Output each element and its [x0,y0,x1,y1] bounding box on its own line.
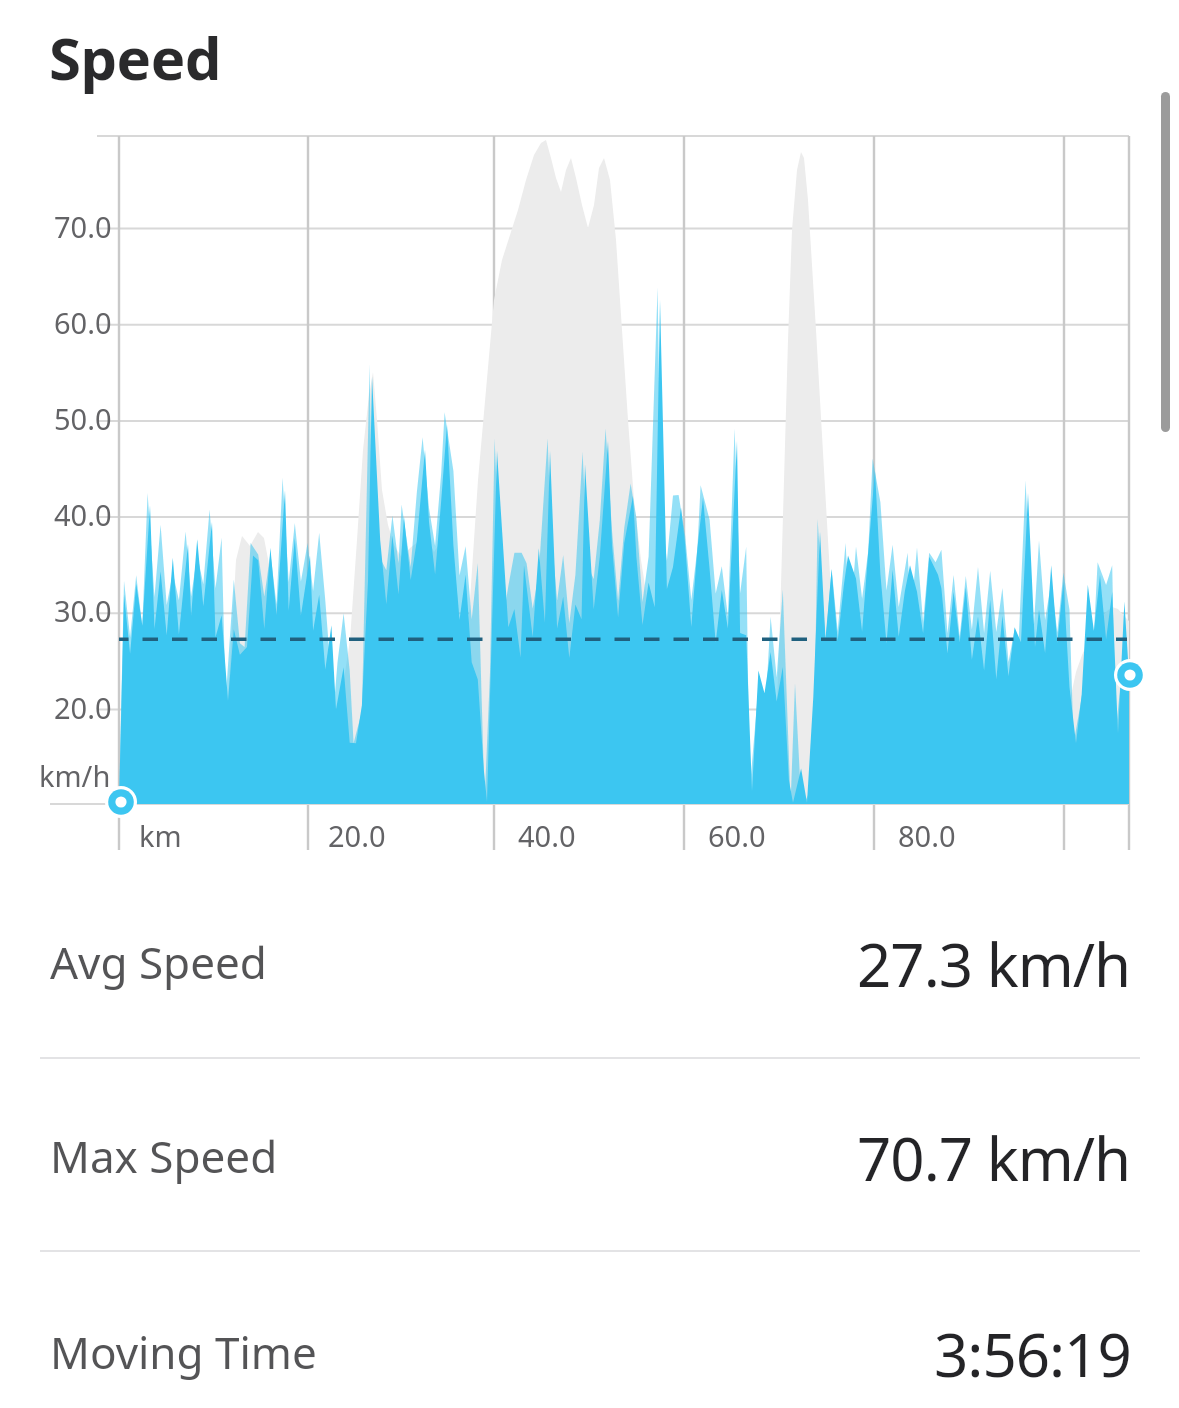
staticText: 20.0 [328,816,386,855]
button[interactable]: Moving Time [0,1286,1179,1408]
staticText: Moving Time [50,1322,317,1382]
button[interactable]: Max Speed [0,1090,1179,1220]
staticText: 3:56:19 [934,1313,1131,1395]
staticText: Avg Speed [50,932,267,992]
button[interactable]: Avg Speed [0,896,1179,1026]
staticText: 70.0 [54,207,112,246]
staticText: km [139,816,182,855]
staticText: 60.0 [708,816,766,855]
staticText: 80.0 [898,816,956,855]
staticText: 27.3 km/h [857,923,1131,1005]
staticText: 30.0 [54,591,112,630]
staticText: 40.0 [518,816,576,855]
staticText: 60.0 [54,303,112,342]
staticText: km/h [39,756,111,795]
staticText: 40.0 [54,495,112,534]
staticText: 50.0 [54,399,112,438]
staticText: 70.7 km/h [857,1117,1131,1199]
staticText: Max Speed [50,1126,278,1186]
staticText: Speed [49,18,222,97]
staticText: 20.0 [54,688,112,727]
